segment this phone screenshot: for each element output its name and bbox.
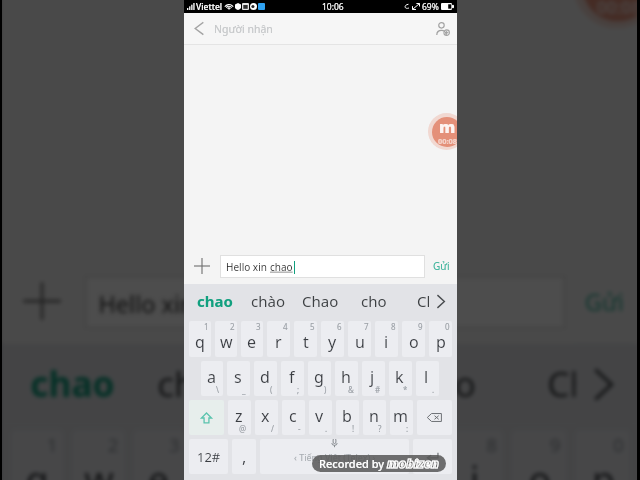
staticText: 10:06 bbox=[322, 1, 344, 13]
staticText: v bbox=[315, 405, 324, 427]
staticText: . bbox=[325, 423, 328, 434]
button[interactable]: 5 bbox=[258, 430, 312, 480]
button[interactable]: chào bbox=[241, 284, 294, 318]
button[interactable]: chao bbox=[188, 284, 241, 318]
button[interactable]: a bbox=[201, 361, 223, 396]
staticText: e bbox=[247, 331, 257, 353]
button[interactable]: 3 bbox=[134, 430, 185, 480]
button[interactable]: Backspace bbox=[417, 400, 452, 435]
staticText: 69% bbox=[422, 1, 439, 13]
button[interactable]: Chao bbox=[294, 284, 347, 318]
button[interactable]: 7 bbox=[348, 321, 371, 357]
staticText: z bbox=[235, 405, 243, 427]
button[interactable]: 6 bbox=[321, 321, 344, 357]
staticText: chao bbox=[30, 360, 115, 407]
button[interactable]: 9 bbox=[512, 430, 566, 480]
button[interactable]: 12# bbox=[189, 439, 228, 474]
button[interactable]: Shift bbox=[189, 400, 224, 435]
button[interactable]: d bbox=[254, 361, 277, 396]
staticText: m bbox=[439, 117, 456, 138]
staticText: p bbox=[436, 331, 446, 353]
button[interactable]: Space bbox=[260, 439, 409, 474]
staticText: Ch bbox=[547, 360, 592, 407]
button[interactable]: Ch bbox=[507, 343, 632, 423]
staticText: : bbox=[406, 423, 409, 434]
button[interactable]: c bbox=[282, 400, 305, 435]
staticText: Recorded by bbox=[319, 456, 387, 471]
button[interactable]: chao bbox=[9, 343, 134, 423]
button[interactable]: m bbox=[390, 400, 413, 435]
button[interactable]: j bbox=[362, 361, 385, 396]
staticText: m bbox=[393, 405, 408, 427]
staticText: 6 bbox=[359, 430, 371, 456]
button[interactable]: Add attachment bbox=[184, 248, 220, 284]
button[interactable]: Ch bbox=[400, 284, 453, 318]
button[interactable]: 1 bbox=[189, 321, 211, 357]
button[interactable]: , bbox=[232, 439, 256, 474]
button[interactable]: l bbox=[416, 361, 439, 396]
staticText: ( bbox=[270, 384, 273, 395]
staticText: - bbox=[298, 423, 301, 434]
staticText: 5 bbox=[296, 430, 308, 456]
staticText: 8 bbox=[486, 430, 498, 456]
staticText: g bbox=[314, 366, 324, 388]
button[interactable]: k bbox=[389, 361, 412, 396]
button[interactable]: 1 bbox=[11, 430, 63, 480]
button[interactable]: chào bbox=[134, 343, 258, 423]
button[interactable]: n bbox=[363, 400, 386, 435]
staticText: Người nhận bbox=[214, 22, 273, 36]
button[interactable]: cho bbox=[383, 343, 507, 423]
button[interactable]: Gửi bbox=[425, 248, 457, 284]
button[interactable]: Gửi bbox=[566, 259, 640, 343]
button[interactable]: Enter bbox=[413, 439, 452, 474]
button[interactable]: More suggestions bbox=[575, 343, 632, 423]
button[interactable]: Hello xin bbox=[84, 275, 566, 329]
staticText: p bbox=[592, 454, 615, 480]
button[interactable]: Back bbox=[184, 13, 214, 44]
button[interactable]: 6 bbox=[322, 430, 376, 480]
button[interactable]: More suggestions bbox=[429, 284, 453, 318]
button[interactable]: 8 bbox=[375, 321, 398, 357]
staticText: 9 bbox=[550, 430, 561, 456]
staticText: c bbox=[289, 405, 297, 427]
button[interactable]: 0 bbox=[429, 321, 452, 357]
button[interactable]: 9 bbox=[402, 321, 425, 357]
button[interactable]: x bbox=[255, 400, 278, 435]
button[interactable]: cho bbox=[347, 284, 400, 318]
staticText: 2 bbox=[230, 321, 235, 332]
staticText: chào bbox=[157, 360, 237, 407]
button[interactable]: s bbox=[227, 361, 250, 396]
staticText: mobizen bbox=[387, 455, 439, 472]
button[interactable]: 2 bbox=[73, 430, 124, 480]
button[interactable]: Chao bbox=[258, 343, 383, 423]
button[interactable]: g bbox=[308, 361, 331, 396]
button[interactable]: 3 bbox=[241, 321, 263, 357]
button[interactable]: Add recipient bbox=[427, 13, 457, 44]
staticText: r bbox=[275, 331, 282, 353]
button[interactable]: 8 bbox=[449, 430, 503, 480]
button[interactable]: 4 bbox=[267, 321, 290, 357]
button[interactable]: 5 bbox=[294, 321, 317, 357]
button[interactable]: Add attachment bbox=[0, 259, 84, 343]
button[interactable]: z bbox=[228, 400, 251, 435]
staticText: 8 bbox=[391, 321, 396, 332]
staticText: chao bbox=[197, 291, 233, 311]
staticText: 00:08 bbox=[438, 136, 457, 144]
button[interactable]: 7 bbox=[385, 430, 439, 480]
button[interactable]: f bbox=[281, 361, 304, 396]
button[interactable]: Hello xin bbox=[220, 255, 425, 278]
staticText: 6 bbox=[337, 321, 342, 332]
button[interactable]: v bbox=[309, 400, 332, 435]
button[interactable]: h bbox=[335, 361, 358, 396]
staticText: ! bbox=[352, 423, 355, 434]
button[interactable]: 0 bbox=[575, 430, 630, 480]
staticText: o bbox=[409, 331, 419, 353]
staticText: 4 bbox=[232, 430, 244, 456]
button[interactable]: 2 bbox=[215, 321, 237, 357]
button[interactable]: b bbox=[336, 400, 359, 435]
staticText: chào bbox=[251, 291, 285, 311]
button[interactable]: 4 bbox=[195, 430, 249, 480]
staticText: 00:08 bbox=[597, 0, 640, 14]
